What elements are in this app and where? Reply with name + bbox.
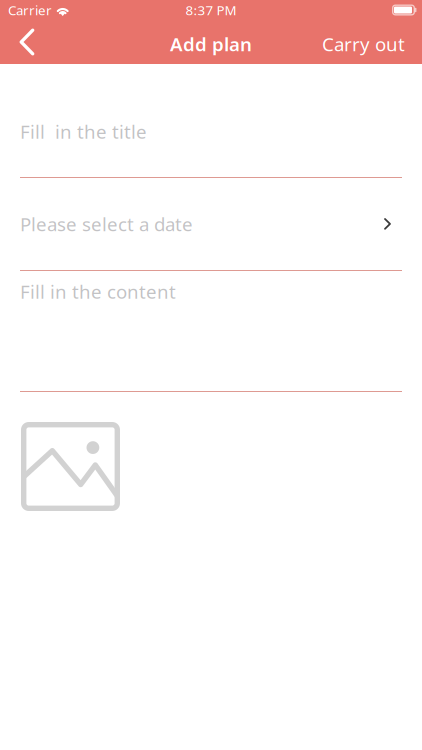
button[interactable]: Fill in the title xyxy=(0,86,422,178)
button[interactable]: Carry out xyxy=(313,20,414,64)
staticText: Carrier xyxy=(8,1,52,19)
staticText: 8:37 PM xyxy=(185,1,236,19)
staticText: Fill in the content xyxy=(20,279,176,304)
button[interactable]: Please select a date xyxy=(0,178,422,271)
button[interactable]: Add photo xyxy=(21,422,120,511)
staticText: Fill in the title xyxy=(20,119,147,144)
button[interactable]: Back xyxy=(5,20,49,64)
staticText: Add plan xyxy=(170,32,252,56)
staticText: Carry out xyxy=(322,32,405,56)
button[interactable]: Fill in the content xyxy=(0,271,422,392)
staticText: Please select a date xyxy=(20,212,193,236)
